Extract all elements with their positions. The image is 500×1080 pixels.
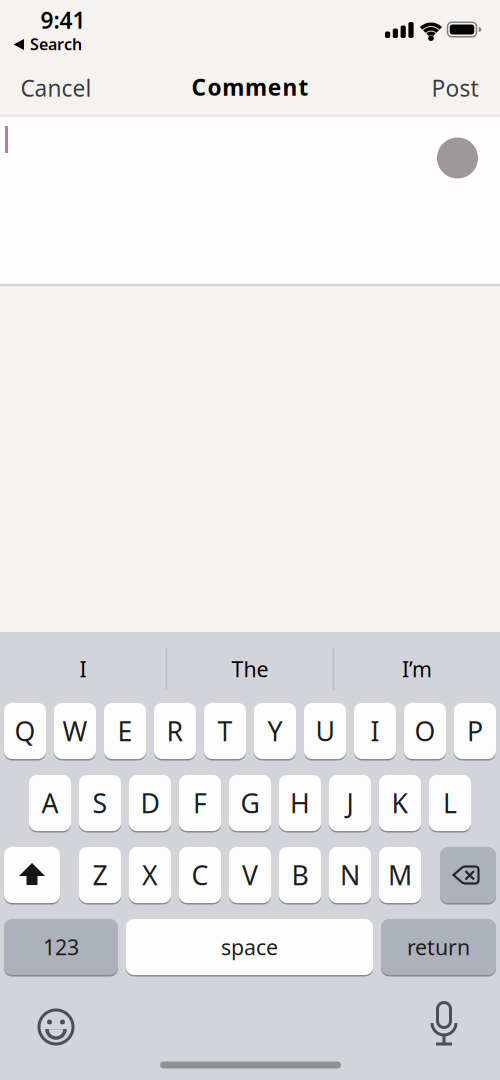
button[interactable]: O — [404, 703, 446, 759]
button[interactable]: Shift — [4, 847, 60, 903]
button[interactable]: A — [29, 775, 71, 831]
button[interactable]: Y — [254, 703, 296, 759]
staticText: E — [117, 713, 132, 749]
button[interactable]: Dictate — [416, 998, 472, 1054]
staticText: S — [92, 785, 107, 821]
button[interactable]: F — [179, 775, 221, 831]
staticText: 9:41 — [40, 5, 85, 35]
button[interactable]: Post — [431, 73, 478, 103]
button[interactable]: R — [154, 703, 196, 759]
button[interactable]: J — [329, 775, 371, 831]
button[interactable]: P — [454, 703, 496, 759]
staticText: The — [231, 655, 268, 683]
button[interactable]: G — [229, 775, 271, 831]
staticText: F — [193, 785, 207, 821]
staticText: P — [467, 713, 483, 749]
staticText: W — [62, 713, 87, 749]
button[interactable]: E — [104, 703, 146, 759]
staticText: I — [79, 655, 86, 683]
staticText: Search — [30, 33, 82, 55]
staticText: T — [217, 713, 232, 749]
button[interactable]: Emoji — [28, 999, 84, 1055]
button[interactable]: Profile photo — [437, 137, 478, 178]
staticText: N — [340, 857, 360, 893]
staticText: L — [443, 785, 457, 821]
staticText: V — [242, 857, 258, 893]
button[interactable]: B — [279, 847, 321, 903]
staticText: B — [291, 857, 308, 893]
staticText: Q — [14, 713, 35, 749]
button[interactable]: C — [179, 847, 221, 903]
staticText: H — [290, 785, 310, 821]
staticText: A — [41, 785, 58, 821]
button[interactable]: T — [204, 703, 246, 759]
button[interactable]: I — [354, 703, 396, 759]
button[interactable]: N — [329, 847, 371, 903]
staticText: K — [391, 785, 408, 821]
staticText: I’m — [402, 655, 432, 683]
button[interactable]: V — [229, 847, 271, 903]
staticText: X — [142, 857, 158, 893]
button[interactable]: Q — [4, 703, 46, 759]
button[interactable]: Delete — [440, 847, 496, 903]
button[interactable]: D — [129, 775, 171, 831]
button[interactable]: I — [3, 641, 163, 697]
staticText: return — [407, 933, 470, 961]
button[interactable]: The — [170, 641, 330, 697]
staticText: C — [191, 857, 208, 893]
button[interactable]: Back to Search — [12, 34, 92, 55]
button[interactable]: I’m — [337, 641, 497, 697]
button[interactable]: M — [379, 847, 421, 903]
button[interactable]: return — [381, 919, 496, 975]
staticText: J — [346, 785, 353, 821]
button[interactable]: K — [379, 775, 421, 831]
staticText: Z — [92, 857, 107, 893]
button[interactable]: L — [429, 775, 471, 831]
staticText: D — [140, 785, 159, 821]
staticText: 123 — [43, 933, 79, 961]
button[interactable]: U — [304, 703, 346, 759]
button[interactable]: space — [126, 919, 373, 975]
button[interactable]: W — [54, 703, 96, 759]
staticText: Y — [267, 713, 282, 749]
staticText: I — [370, 713, 379, 749]
staticText: Post — [431, 73, 478, 103]
button[interactable]: S — [79, 775, 121, 831]
staticText: Comment — [192, 72, 308, 102]
button[interactable]: X — [129, 847, 171, 903]
staticText: space — [221, 933, 278, 961]
staticText: R — [166, 713, 183, 749]
staticText: G — [240, 785, 259, 821]
button[interactable]: H — [279, 775, 321, 831]
staticText: M — [388, 857, 412, 893]
staticText: O — [414, 713, 435, 749]
staticText: U — [315, 713, 334, 749]
button[interactable]: 123 — [4, 919, 118, 975]
staticText: Cancel — [20, 73, 91, 103]
button[interactable]: Z — [79, 847, 121, 903]
button[interactable]: Cancel — [20, 73, 91, 103]
